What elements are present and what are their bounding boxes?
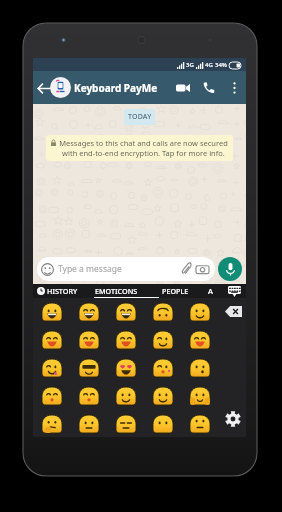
button[interactable]: Emoji (181, 298, 218, 326)
staticText: 34% (215, 61, 227, 69)
staticText: 3G (186, 61, 194, 69)
staticText: Type a message (58, 263, 122, 275)
button[interactable]: Back (34, 77, 53, 99)
button[interactable]: Settings (223, 409, 243, 429)
button[interactable]: Emoji (181, 382, 218, 410)
button[interactable]: Emoji (144, 410, 181, 437)
button[interactable]: Emoji (33, 382, 70, 410)
button[interactable]: Emoji (144, 298, 181, 326)
button[interactable]: Emoji (70, 354, 107, 382)
button[interactable]: Emoji (107, 326, 144, 354)
staticText: Keyboard PayMe (74, 81, 158, 95)
staticText: TODAY (128, 112, 152, 122)
button[interactable]: Emoji (107, 410, 144, 437)
button[interactable]: Delete (225, 306, 242, 317)
button[interactable]: Emoji (107, 354, 144, 382)
staticText: Messages to this chat and calls are now … (59, 138, 228, 158)
button[interactable]: HISTORY (37, 284, 78, 298)
button[interactable]: Emoji (33, 298, 70, 326)
button[interactable]: Keyboard (226, 285, 243, 298)
button[interactable]: TODAY (124, 109, 155, 125)
button[interactable]: Emoji (107, 298, 144, 326)
button[interactable]: Emoji (144, 326, 181, 354)
button[interactable]: Record voice message (218, 257, 242, 281)
button[interactable]: EMOTICONS (95, 284, 138, 298)
staticText: HISTORY (47, 286, 78, 296)
button[interactable]: More options (225, 76, 243, 100)
button[interactable]: Emoji (70, 298, 107, 326)
button[interactable]: Emoji (33, 410, 70, 437)
button[interactable]: Emoji (107, 382, 144, 410)
staticText: PEOPLE (162, 286, 189, 296)
button[interactable]: Call (198, 76, 220, 100)
button[interactable]: Emoji (33, 326, 70, 354)
staticText: A (208, 286, 213, 296)
button[interactable]: Type a message (37, 257, 215, 281)
button[interactable]: Emoji (144, 382, 181, 410)
button[interactable]: Emoji (181, 326, 218, 354)
button[interactable]: Messages to this chat and calls are now … (46, 135, 233, 161)
button[interactable]: Emoji (70, 410, 107, 437)
staticText: EMOTICONS (95, 286, 138, 296)
button[interactable]: Emoji (70, 382, 107, 410)
staticText: 4G (205, 61, 213, 69)
button[interactable]: Emoji (33, 354, 70, 382)
button[interactable]: PEOPLE (162, 284, 189, 298)
button[interactable]: Emoji (181, 410, 218, 437)
button[interactable]: Emoji (144, 354, 181, 382)
button[interactable]: Emoji (70, 326, 107, 354)
button[interactable]: Emoji (181, 354, 218, 382)
button[interactable]: Video call (172, 76, 194, 100)
